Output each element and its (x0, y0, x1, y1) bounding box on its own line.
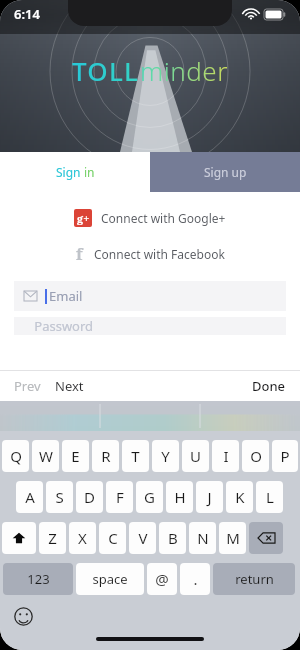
button[interactable]: A (16, 481, 43, 513)
button[interactable]: N (189, 522, 216, 554)
staticText: g+ (77, 211, 90, 226)
button[interactable]: Sign (0, 152, 150, 192)
staticText: space (92, 570, 128, 588)
button[interactable]: Q (2, 440, 29, 472)
button[interactable]: S (46, 481, 73, 513)
staticText: P (280, 446, 290, 466)
button[interactable]: f (0, 242, 300, 266)
staticText: V (138, 528, 148, 548)
button[interactable]: R (92, 440, 119, 472)
button[interactable]: Sign up (150, 152, 300, 192)
button[interactable]: Email (14, 281, 286, 311)
staticText: J (207, 487, 212, 507)
staticText: . (193, 569, 198, 589)
button[interactable]: space (76, 563, 144, 595)
staticText: Sign (56, 164, 84, 180)
staticText: Sign up (204, 164, 247, 180)
button[interactable]: Password (14, 317, 286, 335)
staticText: TOLL (72, 53, 140, 88)
button[interactable]: I (212, 440, 239, 472)
staticText: Z (48, 528, 57, 548)
staticText: 6:14 (14, 5, 40, 23)
staticText: 123 (27, 570, 50, 588)
staticText: U (190, 446, 201, 466)
staticText: Q (10, 446, 22, 466)
button[interactable]: Backspace (249, 522, 283, 554)
button[interactable]: J (196, 481, 223, 513)
staticText: H (174, 487, 186, 507)
staticText: S (55, 487, 64, 507)
staticText: f (76, 243, 83, 265)
staticText: @ (155, 569, 169, 589)
staticText: minder (140, 53, 228, 88)
button[interactable]: return (213, 563, 295, 595)
button[interactable]: g+ (0, 206, 300, 230)
staticText: G (144, 487, 155, 507)
button[interactable]: H (166, 481, 193, 513)
button[interactable]: Y (152, 440, 179, 472)
button[interactable]: W (32, 440, 59, 472)
button[interactable]: Shift (2, 522, 36, 554)
staticText: O (250, 446, 262, 466)
button[interactable]: Z (39, 522, 66, 554)
button[interactable]: F (106, 481, 133, 513)
button[interactable]: P (272, 440, 298, 472)
button[interactable]: U (182, 440, 209, 472)
button[interactable]: E (62, 440, 89, 472)
staticText: T (131, 446, 140, 466)
staticText: M (226, 528, 240, 548)
staticText: D (84, 487, 95, 507)
staticText: W (39, 446, 53, 466)
button[interactable]: V (129, 522, 156, 554)
staticText: B (168, 528, 178, 548)
button[interactable]: Next (51, 373, 88, 399)
staticText: Connect with Google+ (101, 210, 226, 226)
staticText: K (235, 487, 245, 507)
button[interactable]: M (219, 522, 246, 554)
staticText: X (78, 528, 87, 548)
staticText: R (101, 446, 111, 466)
button[interactable]: X (69, 522, 96, 554)
button[interactable]: D (76, 481, 103, 513)
button[interactable]: B (159, 522, 186, 554)
button[interactable]: K (226, 481, 253, 513)
staticText: Email (49, 287, 83, 305)
button[interactable]: . (180, 563, 210, 595)
staticText: Prev (14, 377, 41, 395)
staticText: C (108, 528, 118, 548)
staticText: A (25, 487, 35, 507)
staticText: Y (161, 446, 170, 466)
button[interactable]: C (99, 522, 126, 554)
button[interactable]: @ (147, 563, 177, 595)
staticText: I (223, 446, 229, 466)
button[interactable]: 123 (3, 563, 73, 595)
staticText: E (71, 446, 80, 466)
staticText: L (266, 487, 274, 507)
button[interactable]: L (256, 481, 283, 513)
button[interactable]: Prev (10, 373, 45, 399)
staticText: Password (14, 317, 94, 335)
button[interactable]: Done (248, 373, 290, 399)
staticText: Next (55, 377, 84, 395)
staticText: in (84, 164, 95, 180)
button[interactable]: T (122, 440, 149, 472)
staticText: Done (252, 377, 286, 395)
button[interactable]: O (242, 440, 269, 472)
staticText: N (197, 528, 209, 548)
button[interactable]: Emoji keyboard (12, 605, 34, 627)
button[interactable]: G (136, 481, 163, 513)
staticText: F (116, 487, 124, 507)
staticText: return (235, 570, 274, 588)
staticText: Connect with Facebook (94, 246, 225, 262)
